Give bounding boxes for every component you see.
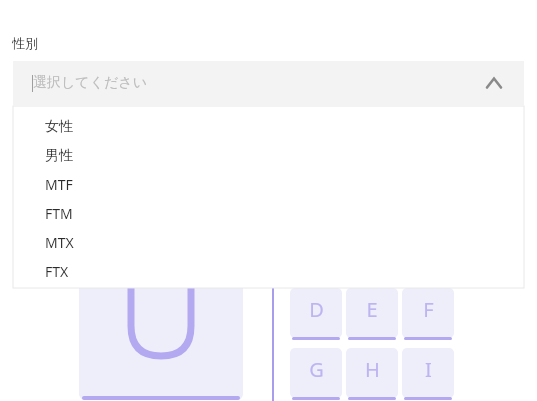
button[interactable]: MTX bbox=[13, 228, 524, 257]
staticText: MTF bbox=[45, 175, 73, 194]
staticText: D bbox=[309, 296, 324, 323]
button[interactable]: G bbox=[290, 348, 342, 400]
button[interactable]: FTM bbox=[13, 199, 524, 228]
button[interactable]: H bbox=[346, 348, 398, 400]
staticText: F bbox=[423, 296, 434, 323]
button[interactable]: F bbox=[402, 288, 454, 340]
button[interactable]: Collapse dropdown bbox=[482, 71, 506, 95]
staticText: MTX bbox=[45, 233, 74, 252]
staticText: FTX bbox=[45, 262, 69, 281]
staticText: 男性 bbox=[45, 147, 73, 165]
staticText: 選択してください bbox=[33, 74, 147, 92]
button[interactable] bbox=[79, 282, 243, 400]
staticText: I bbox=[425, 356, 432, 383]
button[interactable]: MTF bbox=[13, 170, 524, 199]
button[interactable]: 選択してください bbox=[13, 61, 524, 105]
staticText: E bbox=[366, 296, 378, 323]
staticText: 女性 bbox=[45, 118, 73, 136]
staticText: FTM bbox=[45, 204, 73, 223]
button[interactable]: E bbox=[346, 288, 398, 340]
button[interactable]: I bbox=[402, 348, 454, 400]
button[interactable]: 女性 bbox=[13, 112, 524, 141]
button[interactable]: 男性 bbox=[13, 141, 524, 170]
button[interactable]: FTX bbox=[13, 257, 524, 286]
staticText: 性別 bbox=[12, 35, 38, 51]
staticText: H bbox=[365, 356, 380, 383]
staticText: G bbox=[309, 356, 324, 383]
button[interactable]: D bbox=[290, 288, 342, 340]
